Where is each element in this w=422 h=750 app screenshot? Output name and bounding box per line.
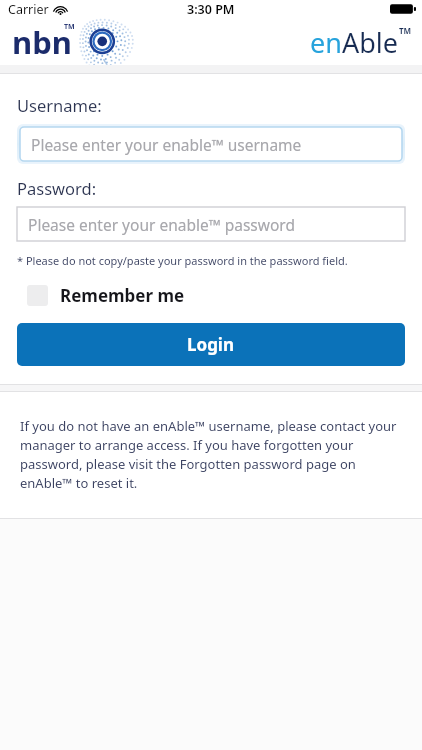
button[interactable]: Please enter your enable™ username — [20, 127, 402, 161]
staticText: Please enter your enable™ username — [31, 134, 302, 155]
staticText: Please enter your enable™ password — [28, 214, 295, 235]
staticText: Able — [342, 24, 399, 61]
staticText: 3:30 PM — [187, 1, 235, 18]
staticText: Username: — [17, 94, 102, 116]
staticText: nbn — [12, 21, 72, 63]
staticText: en — [310, 24, 342, 61]
button[interactable]: Please enter your enable™ password — [17, 207, 405, 241]
staticText: Carrier — [8, 1, 49, 18]
staticText: If you do not have an enAble™ username, … — [20, 417, 402, 492]
staticText: Login — [187, 333, 235, 356]
button[interactable]: Login — [17, 323, 405, 366]
staticText: * Please do not copy/paste your password… — [17, 253, 348, 268]
staticText: Password: — [17, 177, 97, 199]
staticText: TM — [64, 22, 75, 32]
button[interactable]: Remember me — [17, 282, 193, 309]
staticText: Remember me — [60, 284, 185, 307]
staticText: TM — [399, 25, 412, 36]
